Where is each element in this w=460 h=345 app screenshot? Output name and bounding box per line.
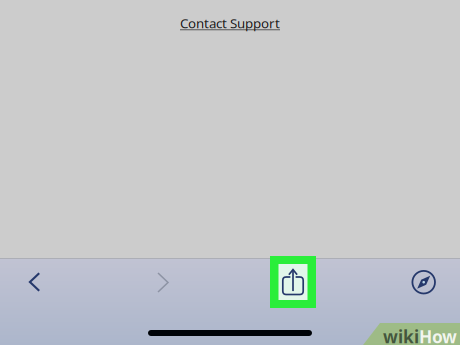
staticText: Contact Support <box>180 14 280 32</box>
button[interactable]: Back <box>13 260 57 304</box>
button[interactable]: Share <box>270 256 316 308</box>
button[interactable]: Forward <box>141 260 185 304</box>
staticText: How <box>419 325 457 345</box>
button[interactable]: Contact Support <box>140 10 320 36</box>
button[interactable]: Tabs <box>402 260 446 304</box>
staticText: wiki <box>383 325 419 345</box>
